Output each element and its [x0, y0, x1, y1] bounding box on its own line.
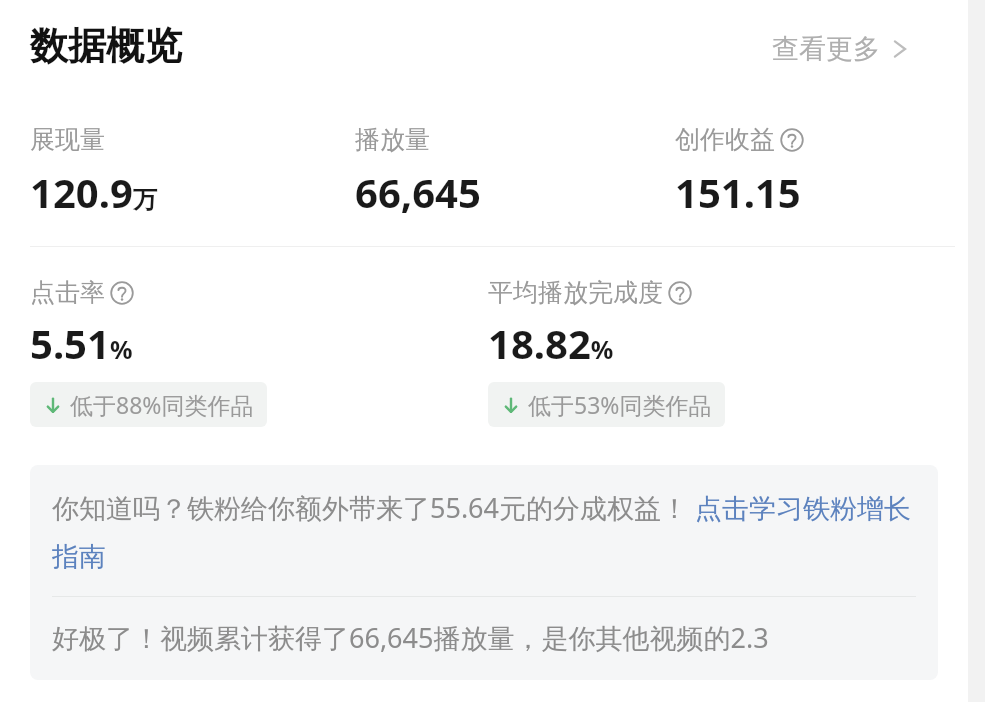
button[interactable]: 低于53%同类作品 — [488, 382, 725, 427]
staticText: 66,645 — [355, 165, 481, 219]
staticText: 低于88%同类作品 — [70, 389, 254, 420]
staticText: 数据概览 — [30, 22, 182, 70]
staticText: 151.15 — [675, 165, 801, 219]
staticText: 平均播放完成度 — [488, 277, 663, 308]
button[interactable]: 低于88%同类作品 — [30, 382, 267, 427]
staticText: 18.82% — [488, 316, 614, 370]
staticText: 好极了！视频累计获得了66,645播放量，是你其他视频的2.3 — [52, 619, 769, 656]
staticText: 创作收益 — [675, 124, 775, 155]
button[interactable]: 查看更多 — [768, 26, 912, 72]
staticText: 展现量 — [30, 124, 105, 155]
staticText: 查看更多 — [772, 32, 880, 66]
staticText: 点击率 — [30, 277, 105, 308]
staticText: 低于53%同类作品 — [528, 389, 712, 420]
staticText: 5.51% — [30, 316, 133, 370]
staticText: 120.9万 — [30, 165, 157, 219]
staticText: 播放量 — [355, 124, 430, 155]
button[interactable]: 你知道吗？铁粉给你额外带来了55.64元的分成权益！ 点击学习铁粉增长指南 — [52, 489, 916, 574]
